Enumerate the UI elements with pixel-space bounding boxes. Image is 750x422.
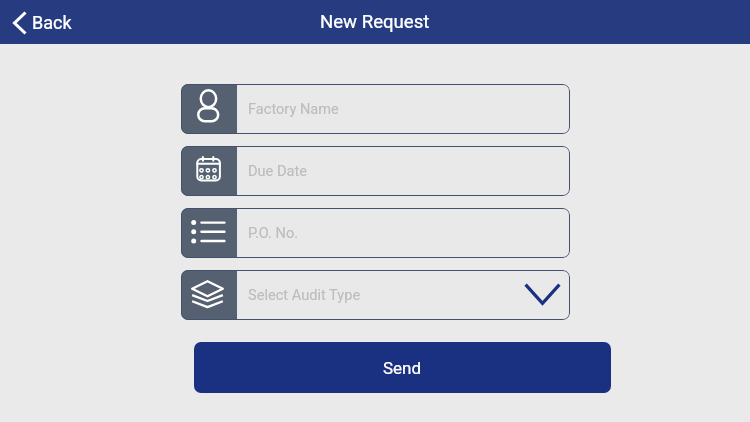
staticText: Factory Name xyxy=(248,100,339,117)
staticText: New Request xyxy=(320,11,430,33)
button[interactable]: Send xyxy=(194,342,611,393)
button[interactable]: P.O. No. xyxy=(181,208,570,258)
staticText: Due Date xyxy=(248,162,308,179)
button[interactable]: Select Audit Type xyxy=(181,270,570,320)
staticText: Back xyxy=(32,12,72,33)
staticText: P.O. No. xyxy=(248,224,299,241)
button[interactable]: Back xyxy=(0,5,85,39)
staticText: Select Audit Type xyxy=(248,286,361,303)
staticText: Send xyxy=(383,358,422,378)
button[interactable]: Due Date xyxy=(181,146,570,196)
button[interactable]: Open audit type list xyxy=(518,273,566,317)
button[interactable]: Factory Name xyxy=(181,84,570,134)
